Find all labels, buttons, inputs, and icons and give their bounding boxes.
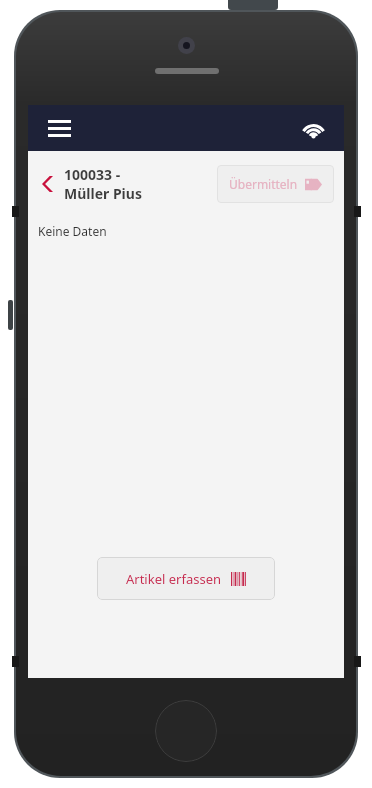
other: Back xyxy=(36,173,58,195)
button[interactable]: Artikel erfassen xyxy=(97,557,275,600)
button[interactable]: Übermitteln xyxy=(217,165,334,203)
staticText: Übermitteln xyxy=(229,176,298,192)
staticText: Artikel erfassen xyxy=(126,570,222,588)
button[interactable]: Open navigation menu xyxy=(42,111,76,145)
button[interactable]: Back xyxy=(36,165,217,203)
staticText: Müller Pius xyxy=(64,184,142,203)
staticText: Keine Daten xyxy=(38,223,107,239)
button[interactable]: Connection status xyxy=(296,111,330,145)
staticText: 100033 - xyxy=(64,165,121,184)
